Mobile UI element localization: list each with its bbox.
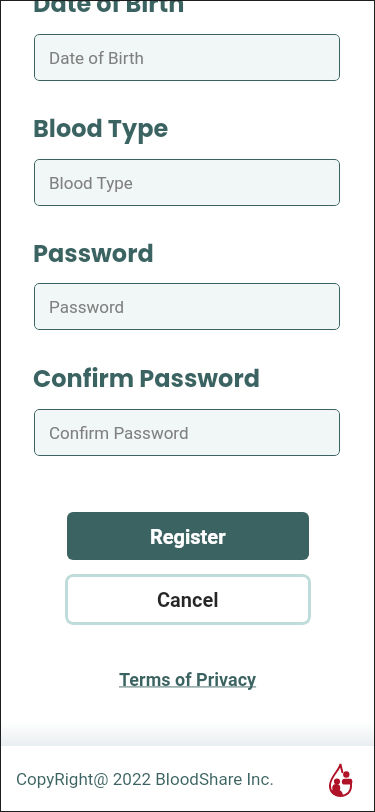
button[interactable]: Terms of Privacy [119,669,257,690]
staticText: Blood Type [49,173,133,193]
staticText: Register [150,525,226,548]
staticText: Confirm Password [49,423,189,443]
button[interactable]: Register [67,512,309,560]
button[interactable]: Cancel [65,574,311,625]
staticText: Date of Birth [49,48,144,68]
button[interactable]: Password [34,283,340,330]
other: BloodShare logo [329,762,352,796]
staticText: Password [33,237,154,271]
button[interactable]: Date of Birth [34,34,340,81]
button[interactable]: Blood Type [34,159,340,206]
staticText: Cancel [157,588,219,611]
staticText: Confirm Password [33,362,260,396]
staticText: CopyRight@ 2022 BloodShare Inc. [16,769,274,789]
staticText: Blood Type [33,112,169,146]
staticText: Date of Birth [33,0,185,21]
button[interactable]: Confirm Password [34,409,340,456]
staticText: Password [49,297,125,317]
